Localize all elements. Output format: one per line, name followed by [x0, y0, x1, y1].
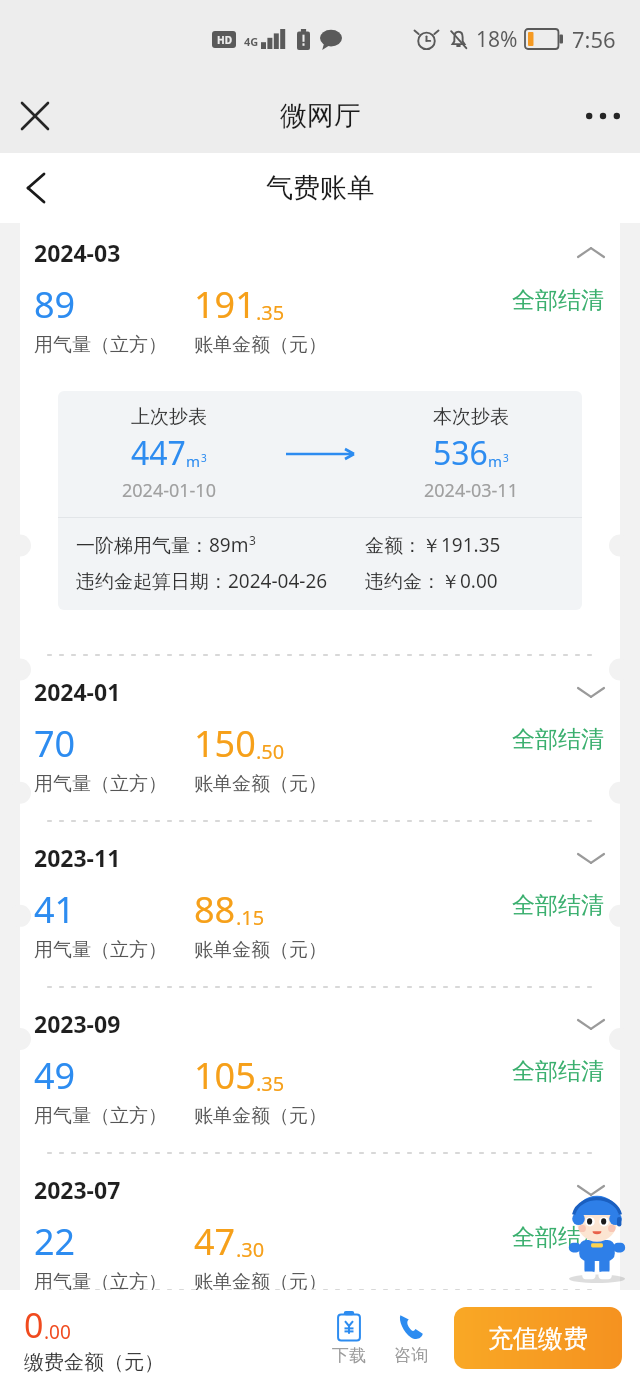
- staticText: .35: [256, 299, 285, 326]
- staticText: 用气量（立方）: [34, 1104, 167, 1128]
- staticText: 违约金起算日期：2024-04-26: [76, 568, 328, 594]
- button[interactable]: 充值缴费: [454, 1307, 622, 1369]
- staticText: 22: [34, 1217, 76, 1266]
- staticText: 2023-09: [34, 1008, 121, 1039]
- staticText: .50: [256, 738, 285, 765]
- staticText: 金额：￥191.35: [365, 532, 501, 558]
- button[interactable]: 2023-09: [20, 1002, 620, 1041]
- staticText: 全部结清: [512, 286, 604, 315]
- button[interactable]: 下载: [320, 1311, 378, 1366]
- staticText: 缴费金额（元）: [24, 1350, 164, 1375]
- staticText: 咨询: [394, 1345, 428, 1366]
- staticText: 用气量（立方）: [34, 1270, 167, 1290]
- staticText: 47: [194, 1217, 236, 1266]
- staticText: 447: [131, 431, 186, 475]
- staticText: 用气量（立方）: [34, 333, 167, 357]
- staticText: 账单金额（元）: [194, 1270, 327, 1290]
- staticText: 49: [34, 1051, 76, 1100]
- button[interactable]: Back: [8, 160, 64, 216]
- staticText: m: [186, 451, 201, 471]
- staticText: m: [488, 451, 503, 471]
- staticText: 全部结清: [512, 1223, 604, 1252]
- staticText: 用气量（立方）: [34, 772, 167, 796]
- staticText: .30: [236, 1236, 265, 1263]
- staticText: 本次抄表: [433, 405, 509, 429]
- staticText: 微网厅: [280, 99, 361, 133]
- staticText: 违约金：￥0.00: [365, 568, 498, 594]
- staticText: 4G: [244, 34, 259, 49]
- staticText: 3: [201, 451, 207, 465]
- staticText: .35: [256, 1070, 285, 1097]
- staticText: 2023-07: [34, 1174, 121, 1205]
- staticText: 下载: [332, 1345, 366, 1366]
- staticText: 上次抄表: [131, 405, 207, 429]
- staticText: .00: [44, 1319, 71, 1345]
- staticText: 191: [194, 280, 256, 329]
- staticText: 2024-03-11: [424, 478, 518, 503]
- staticText: 3: [249, 532, 256, 548]
- staticText: HD: [217, 33, 232, 47]
- button[interactable]: More options: [574, 87, 632, 145]
- staticText: 41: [34, 885, 76, 934]
- staticText: 账单金额（元）: [194, 1104, 327, 1128]
- staticText: 充值缴费: [488, 1323, 588, 1354]
- staticText: .15: [236, 904, 265, 931]
- staticText: 一阶梯用气量：89m: [76, 532, 249, 558]
- staticText: 536: [433, 431, 488, 475]
- staticText: 105: [194, 1051, 256, 1100]
- staticText: 账单金额（元）: [194, 333, 327, 357]
- button[interactable]: Close: [6, 87, 64, 145]
- staticText: 89: [34, 280, 76, 329]
- button[interactable]: 2023-07: [20, 1168, 620, 1207]
- staticText: 18%: [476, 25, 518, 54]
- button[interactable]: 2024-03: [20, 231, 620, 270]
- staticText: 70: [34, 719, 76, 768]
- staticText: 150: [194, 719, 256, 768]
- staticText: 全部结清: [512, 1057, 604, 1086]
- staticText: 账单金额（元）: [194, 938, 327, 962]
- staticText: 全部结清: [512, 891, 604, 920]
- staticText: 2024-01: [34, 676, 121, 707]
- staticText: 账单金额（元）: [194, 772, 327, 796]
- staticText: 2023-11: [34, 842, 121, 873]
- button[interactable]: 咨询: [382, 1311, 440, 1366]
- staticText: 2024-03: [34, 237, 121, 268]
- staticText: 7:56: [572, 24, 616, 54]
- staticText: 0: [24, 1302, 44, 1348]
- staticText: 用气量（立方）: [34, 938, 167, 962]
- staticText: 气费账单: [266, 171, 374, 205]
- button[interactable]: 2024-01: [20, 670, 620, 709]
- staticText: 3: [503, 451, 509, 465]
- staticText: 全部结清: [512, 725, 604, 754]
- staticText: 2024-01-10: [122, 478, 216, 503]
- button[interactable]: 2023-11: [20, 836, 620, 875]
- staticText: 88: [194, 885, 236, 934]
